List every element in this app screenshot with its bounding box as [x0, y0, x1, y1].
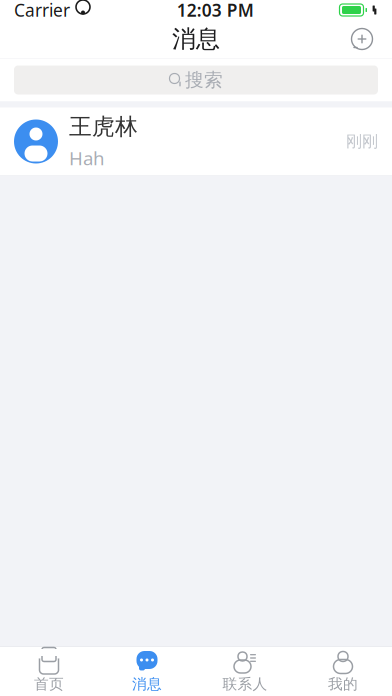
- staticText: 搜索: [185, 68, 223, 91]
- staticText: 12:03 PM: [177, 0, 254, 21]
- button[interactable]: 搜索: [14, 65, 378, 94]
- staticText: 首页: [34, 675, 64, 693]
- staticText: 消息: [132, 675, 162, 693]
- staticText: Hah: [69, 145, 105, 170]
- button[interactable]: 王虎林: [0, 107, 392, 175]
- button[interactable]: New message: [340, 20, 384, 58]
- button[interactable]: 我的: [294, 647, 392, 696]
- staticText: 消息: [172, 24, 220, 54]
- staticText: 王虎林: [69, 113, 138, 140]
- staticText: 刚刚: [346, 132, 378, 151]
- button[interactable]: 首页: [0, 647, 98, 696]
- staticText: 我的: [328, 675, 358, 693]
- button[interactable]: 联系人: [196, 647, 294, 696]
- button[interactable]: 消息: [98, 647, 196, 696]
- staticText: Carrier: [14, 0, 70, 21]
- staticText: 联系人: [222, 675, 267, 693]
